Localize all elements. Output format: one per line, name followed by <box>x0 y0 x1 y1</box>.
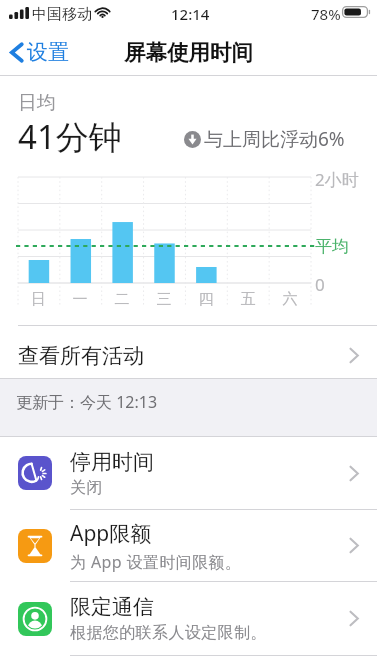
staticText: 查看所有活动 <box>18 343 144 369</box>
staticText: 为 App 设置时间限额。 <box>70 551 242 573</box>
staticText: App限额 <box>70 519 152 548</box>
staticText: 一 <box>59 290 101 309</box>
staticText: 二 <box>101 290 143 309</box>
staticText: 三 <box>143 290 185 309</box>
staticText: 关闭 <box>70 478 103 498</box>
staticText: 41分钟 <box>18 114 122 159</box>
staticText: 中国移动 <box>32 5 92 24</box>
staticText: 日 <box>18 290 59 309</box>
staticText: 与上周比浮动6% <box>204 126 345 152</box>
staticText: 日均 <box>18 91 56 115</box>
staticText: 四 <box>185 290 227 309</box>
staticText: 停用时间 <box>70 449 154 475</box>
button[interactable]: 限定通信 <box>0 582 377 655</box>
other: Open <box>349 347 359 364</box>
button[interactable]: 设置 <box>0 30 75 74</box>
staticText: 平均 <box>315 236 349 257</box>
other: Open <box>349 465 359 482</box>
button[interactable]: 查看所有活动 <box>0 329 377 382</box>
staticText: 12:14 <box>171 4 210 24</box>
staticText: 设置 <box>27 39 69 65</box>
staticText: 限定通信 <box>70 594 154 620</box>
button[interactable]: 停用时间 <box>0 437 377 509</box>
staticText: 78% <box>311 4 341 24</box>
staticText: 五 <box>227 290 269 309</box>
other: Open <box>349 537 359 554</box>
staticText: 2小时 <box>315 168 359 191</box>
staticText: 屏幕使用时间 <box>124 39 253 66</box>
staticText: 根据您的联系人设定限制。 <box>70 623 267 643</box>
other: Open <box>349 610 359 627</box>
staticText: 0 <box>315 273 325 296</box>
staticText: 更新于：今天 12:13 <box>16 391 158 413</box>
staticText: 六 <box>269 290 311 309</box>
button[interactable]: App限额 <box>0 510 377 581</box>
